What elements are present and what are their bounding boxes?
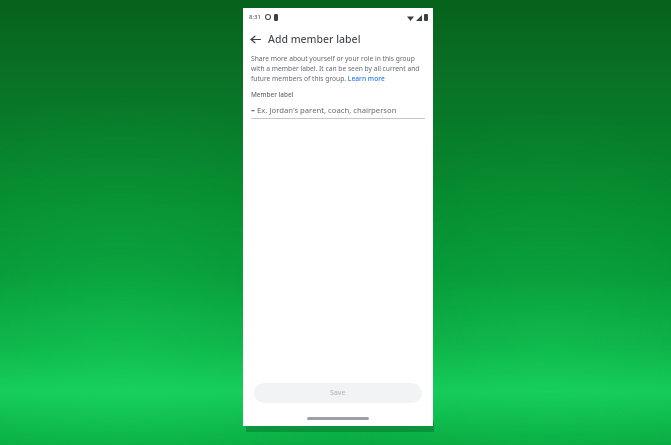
staticText: 8:31 bbox=[249, 13, 261, 21]
button[interactable]: Ex. Jordan's parent, coach, chairperson bbox=[251, 105, 425, 115]
staticText: Member label bbox=[251, 90, 294, 99]
staticText: Share more about yourself or your role i… bbox=[251, 54, 425, 83]
button[interactable]: Save bbox=[254, 383, 422, 403]
button[interactable]: Back bbox=[243, 27, 267, 51]
staticText: Add member label bbox=[268, 32, 361, 46]
staticText: Ex. Jordan's parent, coach, chairperson bbox=[257, 105, 397, 115]
staticText: Save bbox=[330, 388, 346, 398]
